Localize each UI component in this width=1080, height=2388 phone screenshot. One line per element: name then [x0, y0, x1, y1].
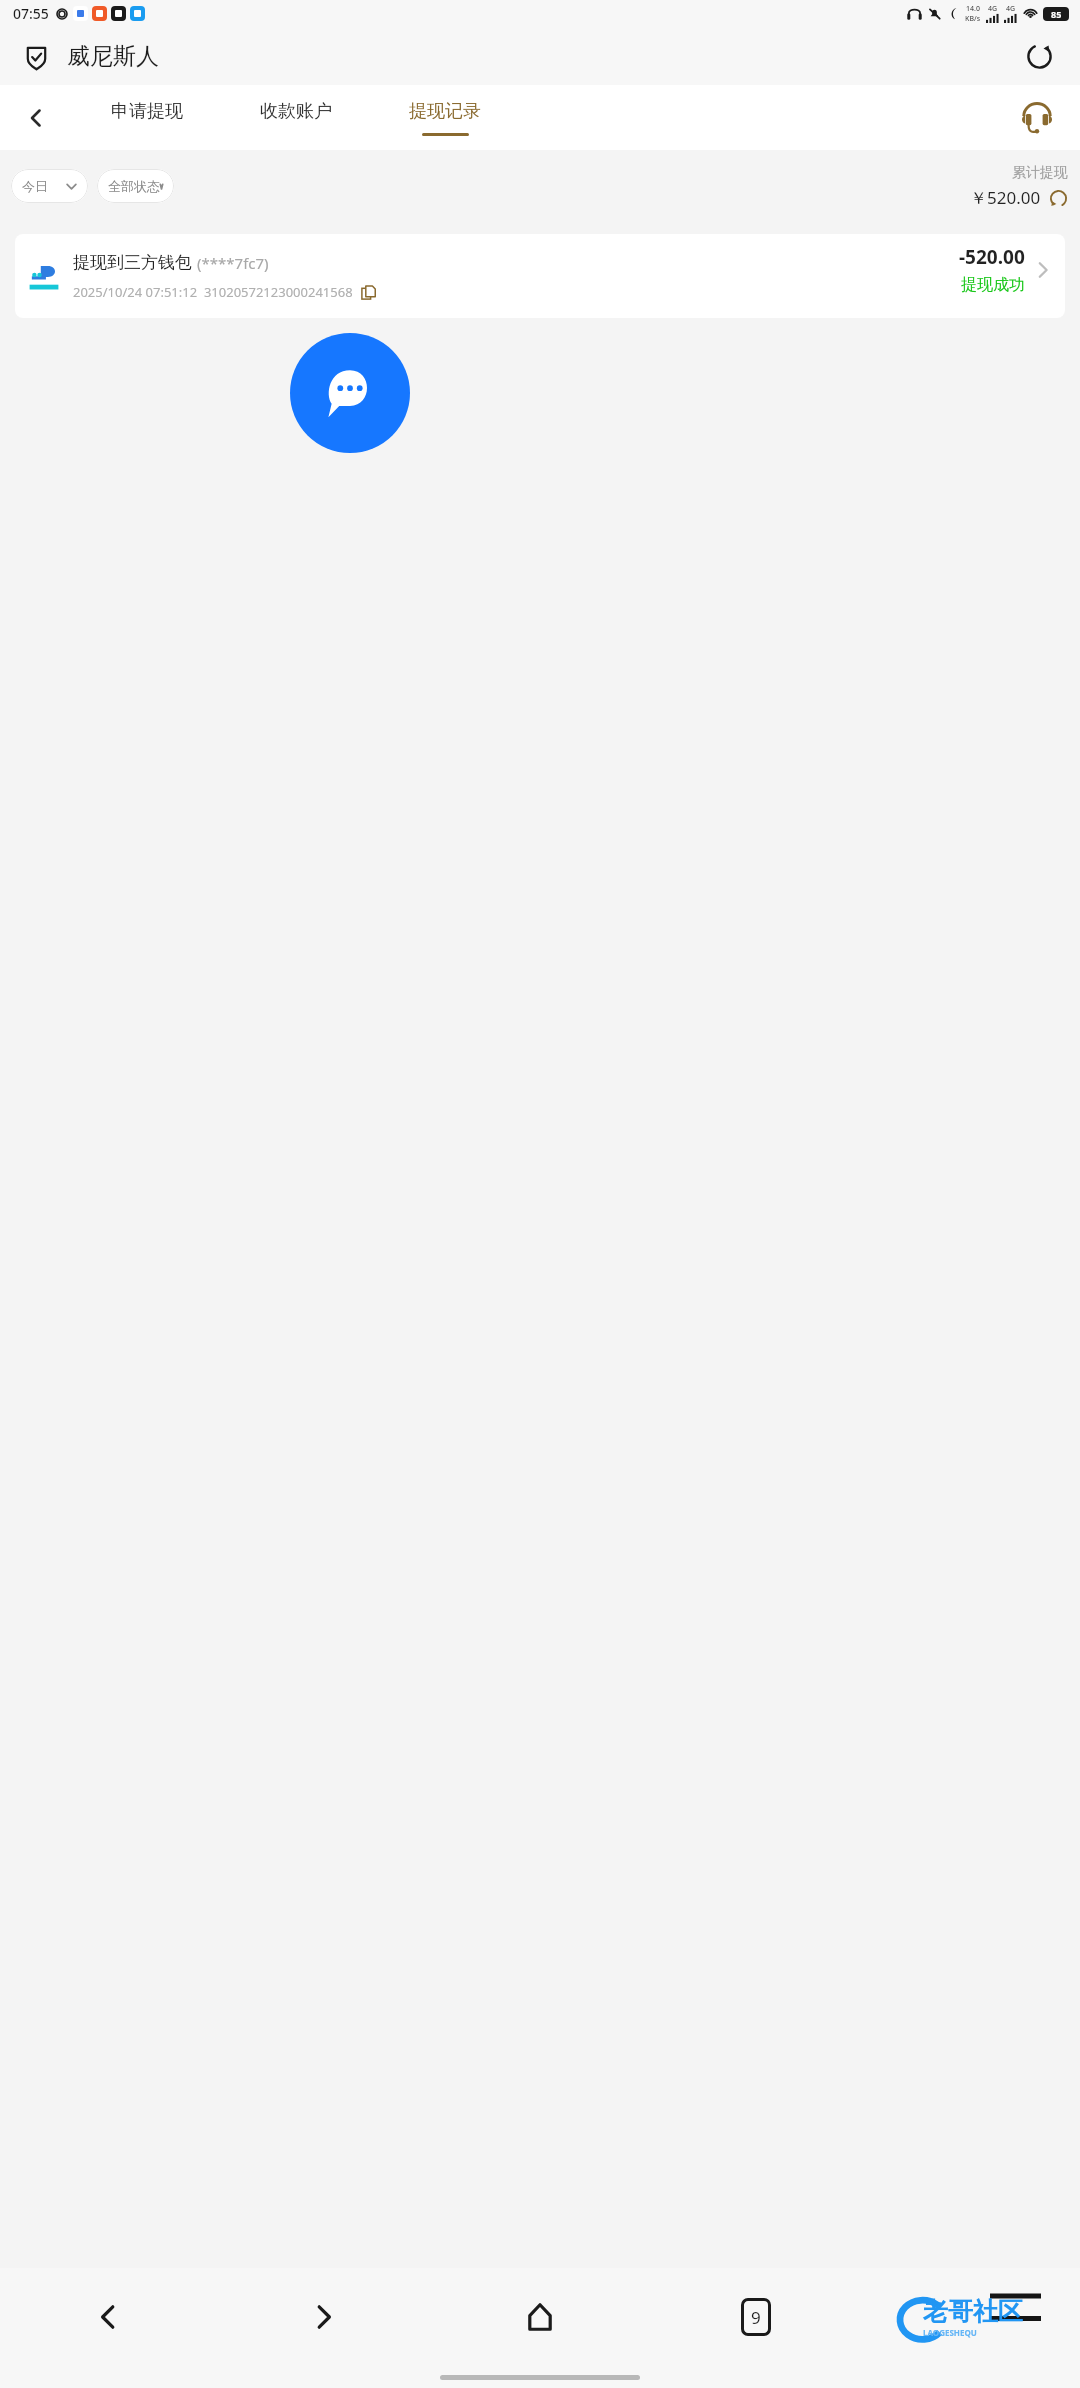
- button[interactable]: Forward: [216, 2268, 432, 2366]
- staticText: -520.00: [959, 244, 1025, 270]
- staticText: 今日: [22, 178, 48, 194]
- button[interactable]: Refresh: [1022, 39, 1056, 73]
- staticText: 提现成功: [961, 275, 1025, 295]
- staticText: 提现到三方钱包: [73, 252, 192, 273]
- button[interactable]: 提现到三方钱包: [15, 234, 1065, 318]
- button[interactable]: Back: [0, 85, 72, 150]
- staticText: LAOGESHEQU: [923, 2327, 977, 2338]
- button[interactable]: Refresh total: [1048, 188, 1068, 208]
- button[interactable]: Copy: [360, 284, 376, 300]
- button[interactable]: 今日: [11, 169, 88, 203]
- button[interactable]: Customer service: [994, 85, 1080, 150]
- button[interactable]: Tabs: [648, 2268, 864, 2366]
- staticText: 4G: [1006, 4, 1016, 14]
- button[interactable]: 收款账户: [222, 85, 370, 150]
- button[interactable]: Verified: [22, 42, 51, 71]
- button[interactable]: Home: [432, 2268, 648, 2366]
- button[interactable]: 全部状态: [97, 169, 174, 203]
- staticText: 提现记录: [409, 100, 481, 123]
- staticText: 威尼斯人: [67, 42, 159, 71]
- staticText: KB/s: [965, 14, 981, 24]
- button[interactable]: Chat support: [290, 333, 410, 453]
- staticText: 收款账户: [260, 100, 332, 123]
- staticText: 全部状态: [108, 178, 160, 194]
- staticText: 85: [1051, 8, 1062, 20]
- staticText: 14.0: [966, 4, 980, 14]
- staticText: 4G: [988, 4, 998, 14]
- staticText: 2025/10/24 07:51:12 31020572123000241568: [73, 283, 353, 301]
- staticText: 累计提现: [1012, 164, 1068, 182]
- button[interactable]: 提现记录: [370, 85, 520, 150]
- staticText: ￥520.00: [970, 186, 1041, 209]
- staticText: 老哥社区: [923, 2296, 1023, 2327]
- staticText: 申请提现: [111, 100, 183, 123]
- staticText: 9: [751, 2306, 761, 2329]
- staticText: 07:55: [13, 4, 49, 23]
- button[interactable]: 申请提现: [72, 85, 222, 150]
- staticText: (****7fc7): [197, 253, 269, 273]
- button[interactable]: Back: [0, 2268, 216, 2366]
